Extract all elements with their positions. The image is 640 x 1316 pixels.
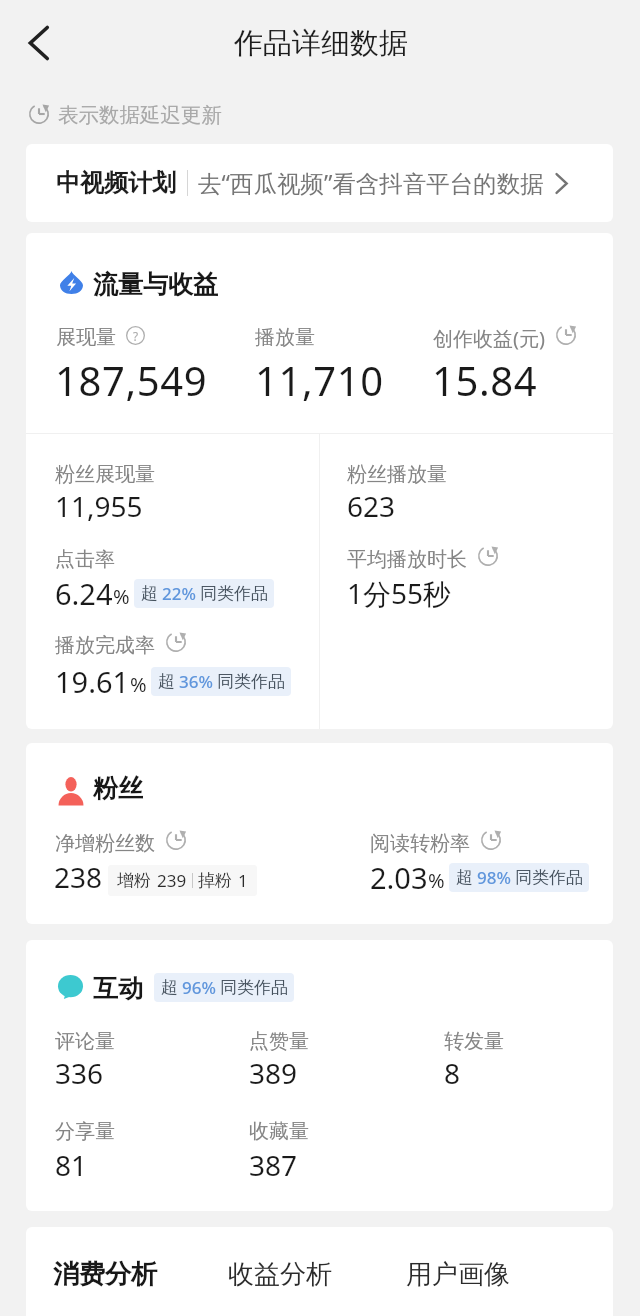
staticText: 创作收益(元): [433, 325, 545, 352]
button[interactable]: 用户画像: [406, 1258, 510, 1291]
staticText: 评论量: [55, 1029, 115, 1054]
staticText: 分享量: [55, 1119, 115, 1144]
staticText: 19.61: [55, 662, 130, 701]
staticText: 11,955: [55, 487, 143, 525]
staticText: 6.24: [55, 574, 113, 613]
staticText: 掉粉: [198, 870, 232, 891]
staticText: 净增粉丝数: [55, 831, 155, 856]
staticText: 98%: [477, 866, 511, 889]
staticText: 阅读转粉率: [370, 831, 470, 856]
staticText: 增粉: [117, 870, 151, 891]
staticText: 11,710: [255, 353, 384, 407]
staticText: 超: [161, 977, 178, 998]
staticText: 同类作品: [217, 671, 285, 692]
staticText: 623: [347, 487, 396, 525]
staticText: 96%: [182, 976, 216, 999]
staticText: 36%: [179, 670, 213, 693]
staticText: %: [130, 671, 147, 698]
staticText: 超: [456, 867, 473, 888]
staticText: 展现量: [56, 325, 116, 350]
staticText: 播放完成率: [55, 633, 155, 658]
staticText: 去“西瓜视频”看含抖音平台的数据: [198, 167, 544, 199]
staticText: 389: [249, 1054, 298, 1092]
staticText: 作品详细数据: [234, 25, 408, 62]
staticText: 互动: [93, 973, 143, 1004]
staticText: 转发量: [444, 1029, 504, 1054]
staticText: 消费分析: [53, 1258, 157, 1291]
staticText: 同类作品: [220, 977, 288, 998]
staticText: ?: [133, 328, 139, 344]
staticText: 用户画像: [406, 1258, 510, 1291]
staticText: 22%: [162, 582, 196, 605]
staticText: 表示数据延迟更新: [58, 102, 222, 128]
staticText: 点击率: [55, 547, 115, 572]
staticText: 187,549: [55, 353, 208, 407]
button[interactable]: 中视频计划: [26, 144, 613, 222]
staticText: 8: [444, 1054, 461, 1092]
staticText: 播放量: [255, 325, 315, 350]
staticText: 239: [157, 869, 187, 892]
button[interactable]: Back: [11, 15, 67, 71]
staticText: 收藏量: [249, 1119, 309, 1144]
staticText: 336: [55, 1054, 104, 1092]
staticText: 81: [55, 1146, 88, 1184]
staticText: 2.03: [370, 858, 428, 897]
staticText: 1分55秒: [347, 574, 452, 612]
staticText: 平均播放时长: [347, 547, 467, 572]
staticText: 粉丝展现量: [55, 462, 155, 487]
staticText: 238: [54, 858, 103, 896]
staticText: 流量与收益: [93, 269, 218, 300]
staticText: 收益分析: [228, 1258, 332, 1291]
staticText: 粉丝播放量: [347, 462, 447, 487]
staticText: 同类作品: [200, 583, 268, 604]
staticText: 15.84: [432, 353, 538, 407]
button[interactable]: 消费分析: [53, 1258, 157, 1291]
staticText: 粉丝: [93, 773, 143, 804]
staticText: 同类作品: [515, 867, 583, 888]
staticText: 1: [238, 869, 248, 892]
staticText: 超: [141, 583, 158, 604]
staticText: %: [113, 583, 130, 610]
staticText: 点赞量: [249, 1029, 309, 1054]
staticText: 387: [249, 1146, 298, 1184]
staticText: 超: [158, 671, 175, 692]
button[interactable]: 收益分析: [228, 1258, 332, 1291]
staticText: %: [428, 867, 445, 894]
staticText: 中视频计划: [56, 168, 176, 198]
